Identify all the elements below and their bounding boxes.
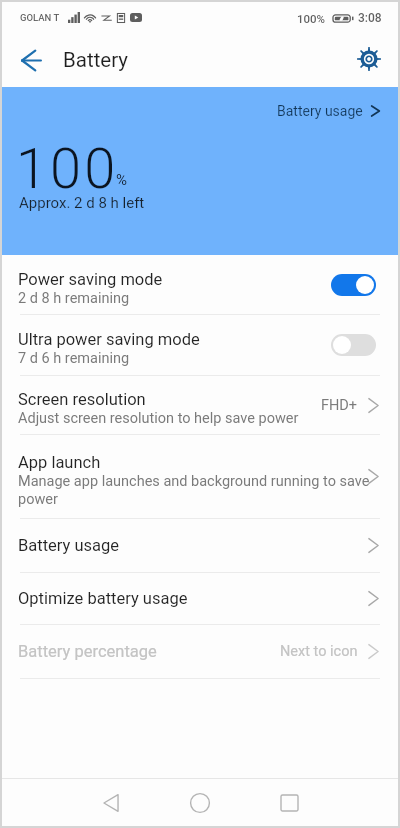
button[interactable]: Power saving mode [2, 255, 398, 314]
button[interactable]: Battery usage [267, 87, 398, 127]
staticText: Battery usage [18, 536, 368, 555]
staticText: 100% [297, 12, 326, 25]
staticText: Adjust screen resolution to help save po… [18, 410, 299, 427]
staticText: Next to icon [280, 643, 358, 660]
button[interactable]: App launch [2, 435, 398, 518]
staticText: FHD+ [321, 397, 358, 414]
button[interactable]: Optimize battery usage [2, 573, 398, 624]
button[interactable]: Settings [346, 33, 398, 87]
staticText: 2 d 8 h remaining [18, 290, 130, 307]
staticText: 3:08 [358, 11, 382, 25]
button[interactable]: Screen resolution [2, 376, 398, 434]
staticText: Battery [63, 48, 129, 72]
staticText: App launch [18, 453, 101, 472]
button[interactable]: Home [176, 779, 224, 826]
button[interactable]: Recents [265, 779, 313, 826]
button[interactable]: Battery usage [2, 519, 398, 572]
staticText: % [116, 171, 127, 189]
staticText: Battery percentage [18, 642, 280, 661]
staticText: Approx. 2 d 8 h left [19, 194, 145, 212]
staticText: GOLAN T [20, 12, 60, 23]
staticText: Screen resolution [18, 390, 146, 409]
button[interactable]: Back [87, 779, 135, 826]
button[interactable]: Back [2, 33, 60, 87]
staticText: Battery usage [277, 103, 363, 119]
staticText: 100 [16, 136, 119, 202]
staticText: Power saving mode [18, 270, 163, 289]
staticText: Optimize battery usage [18, 589, 368, 608]
staticText: Manage app launches and background runni… [18, 473, 372, 508]
button[interactable]: Ultra power saving mode [2, 315, 398, 375]
staticText: 7 d 6 h remaining [18, 350, 130, 367]
button[interactable]: Battery percentage [2, 625, 398, 678]
staticText: Ultra power saving mode [18, 330, 200, 349]
